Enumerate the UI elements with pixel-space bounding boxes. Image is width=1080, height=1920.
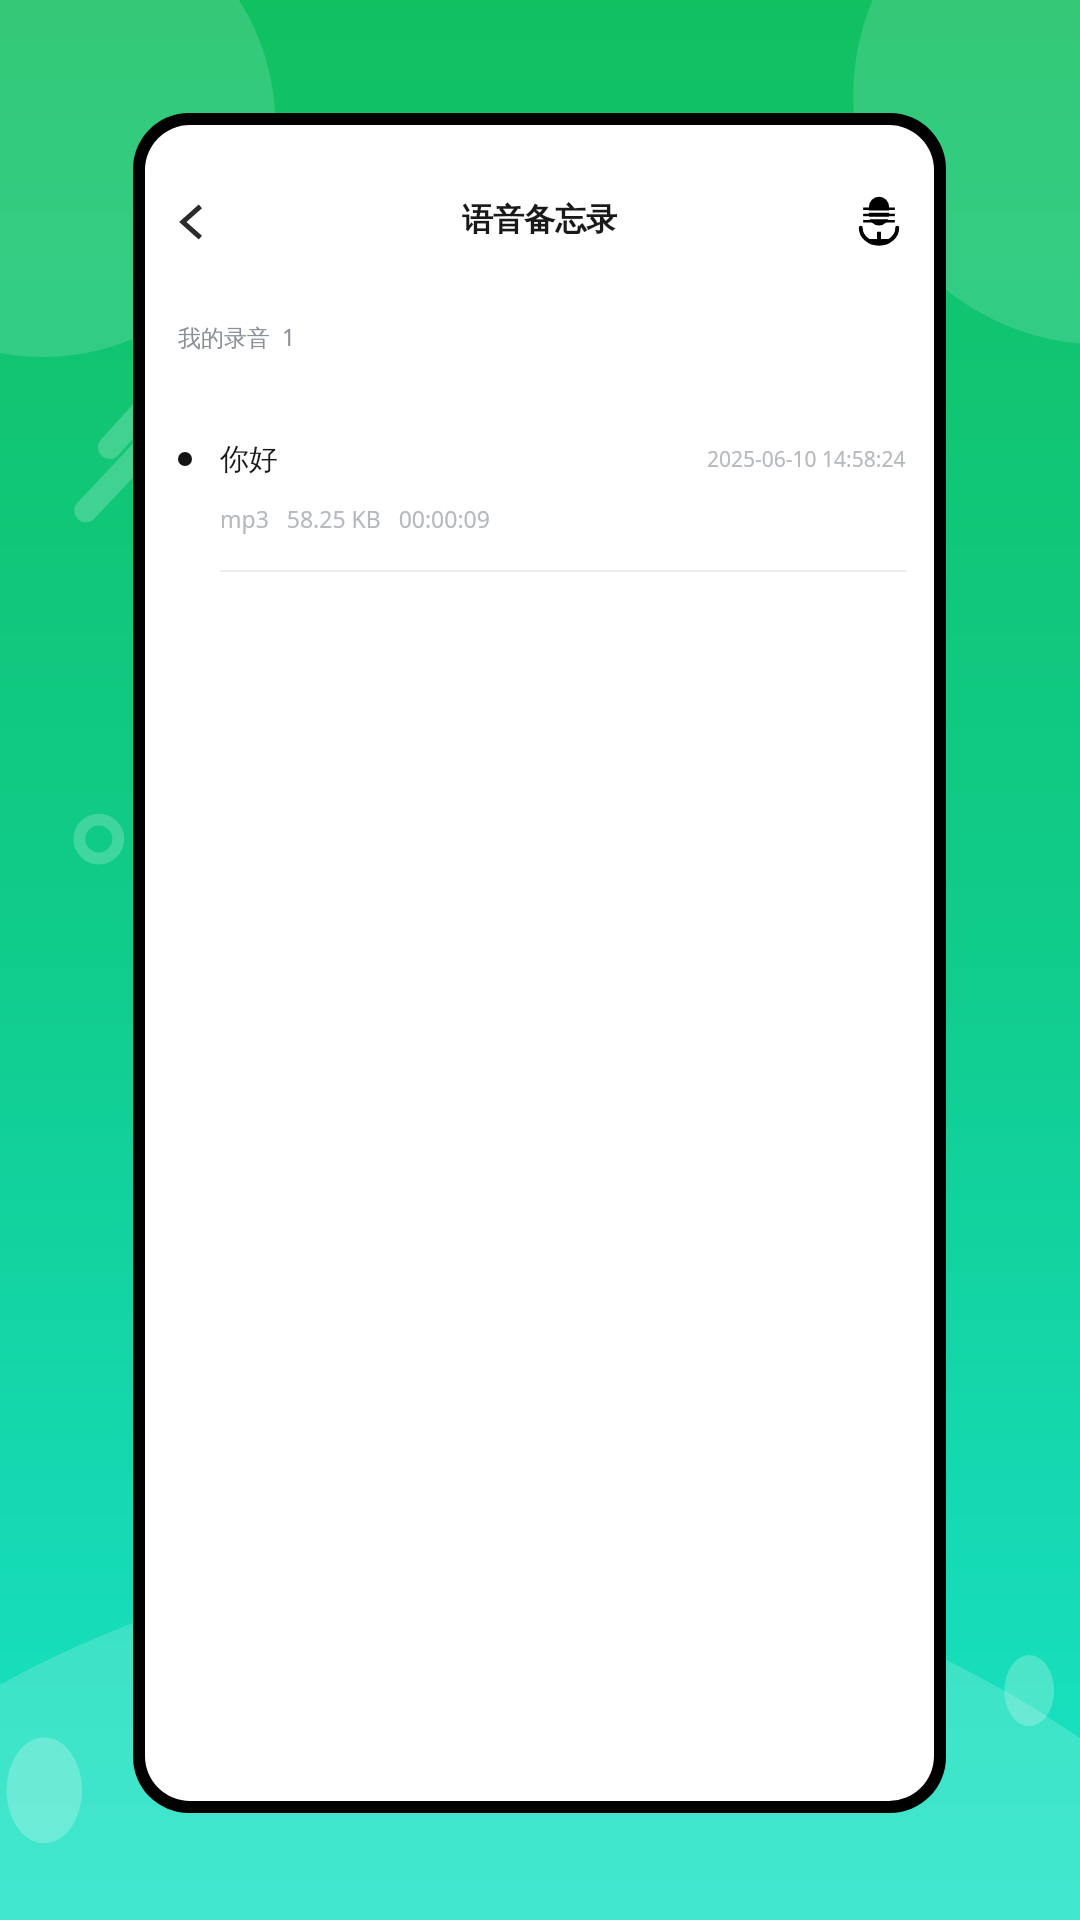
staticText: mp3 58.25 KB 00:00:09 [220,503,490,534]
staticText: 你好 [220,441,278,478]
button[interactable]: Record new voice memo [840,181,918,259]
staticText: 语音备忘录 [145,200,934,239]
staticText: 2025-06-10 14:58:24 [707,445,906,474]
button[interactable]: 你好 [145,425,934,572]
staticText: 我的录音 1 [178,321,296,352]
button[interactable]: Back [153,183,231,261]
